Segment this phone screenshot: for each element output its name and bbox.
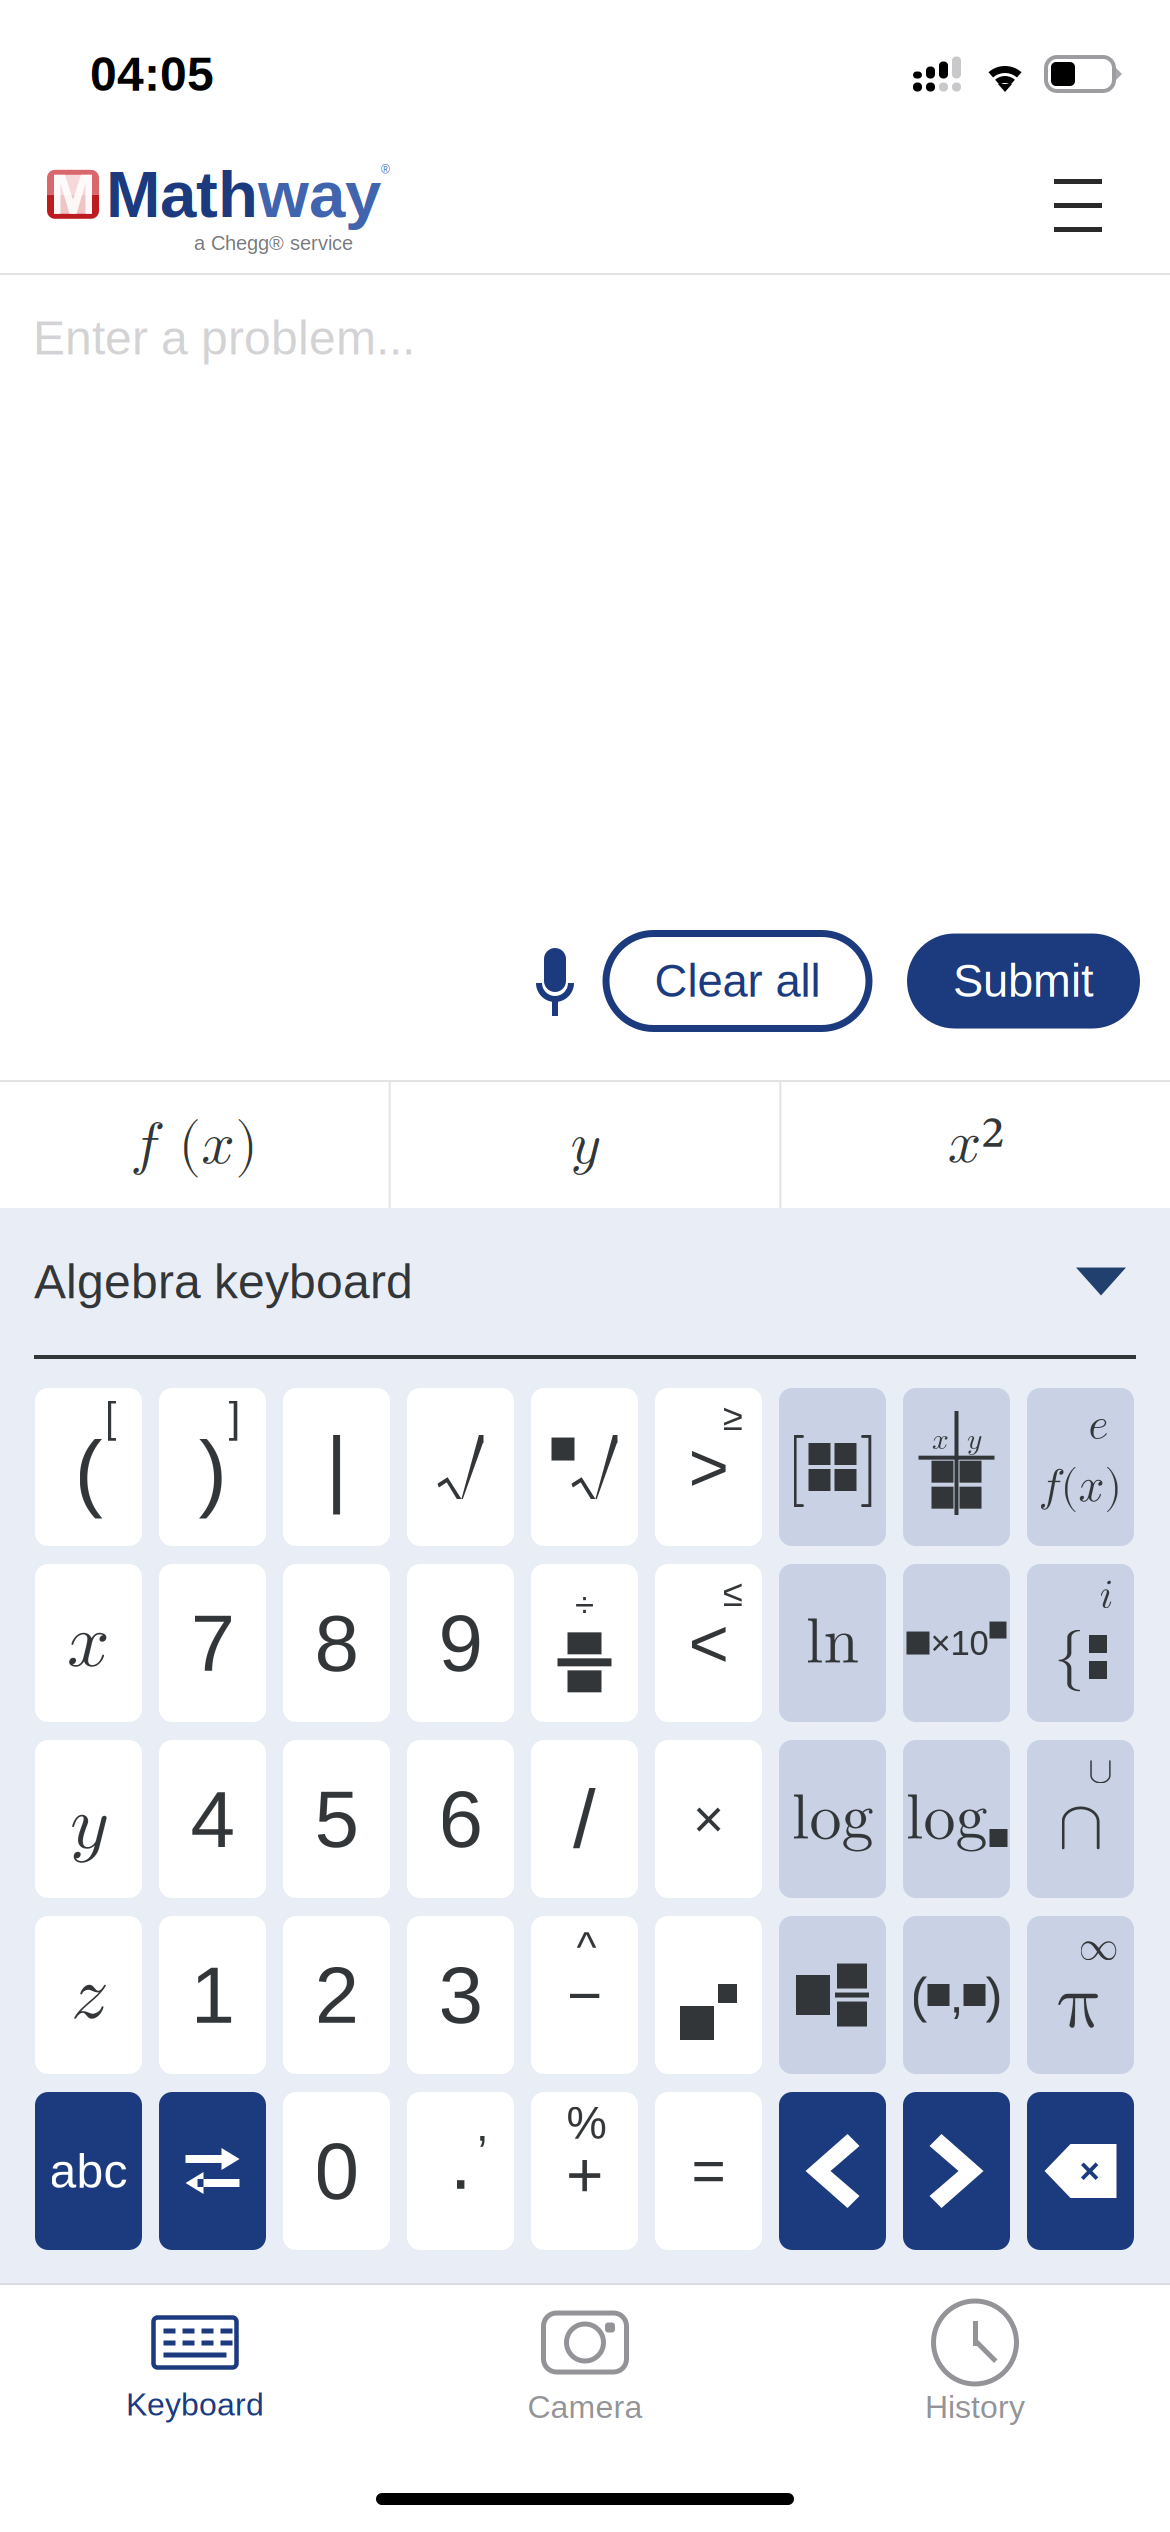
button[interactable] [779, 1916, 886, 2074]
button[interactable]: 𝑥 [35, 1564, 142, 1722]
button[interactable] [407, 1388, 514, 1546]
staticText: ( [74, 1423, 102, 1519]
button[interactable]: ×10 [903, 1564, 1010, 1722]
button[interactable]: log [903, 1740, 1010, 1898]
staticText: 𝑦 [570, 1116, 599, 1174]
button[interactable]: History [780, 2285, 1170, 2445]
staticText: 𝑓(𝑥) [1038, 1464, 1122, 1510]
staticText: ∪ [1088, 1752, 1113, 1790]
button[interactable]: = [655, 2092, 762, 2250]
button[interactable]: 𝑧 [35, 1916, 142, 2074]
button[interactable]: Math [47, 158, 390, 253]
staticText: 𝑦 [967, 1425, 981, 1455]
button[interactable]: log [779, 1740, 886, 1898]
button[interactable]: > [655, 1388, 762, 1546]
button[interactable]: 9 [407, 1564, 514, 1722]
button[interactable]: 5 [283, 1740, 390, 1898]
button[interactable]: 0 [283, 2092, 390, 2250]
button[interactable]: Keyboard [0, 2287, 390, 2442]
button[interactable] [655, 1916, 762, 2074]
button[interactable]: Menu [1038, 163, 1118, 248]
staticText: ^ [576, 1923, 596, 1971]
staticText: 5 [314, 1774, 358, 1864]
staticText: [ [785, 1431, 805, 1503]
button[interactable]: π [1027, 1916, 1134, 2074]
staticText: π [1058, 1964, 1103, 2042]
staticText: 𝑓 (𝑥) [130, 1116, 258, 1174]
button[interactable]: 8 [283, 1564, 390, 1722]
staticText: log [905, 1787, 987, 1851]
staticText: ) [985, 1967, 1002, 2023]
button[interactable]: [ [779, 1388, 886, 1546]
staticText: 𝑒 [1088, 1404, 1108, 1446]
button[interactable] [531, 1388, 638, 1546]
staticText: 7 [190, 1598, 234, 1688]
button[interactable]: ÷ [531, 1564, 638, 1722]
button[interactable] [159, 2092, 266, 2250]
staticText: × [1079, 2152, 1099, 2190]
button[interactable]: 3 [407, 1916, 514, 2074]
button[interactable]: . [407, 2092, 514, 2250]
button[interactable]: ln [779, 1564, 886, 1722]
button[interactable]: 𝑥² [781, 1082, 1170, 1208]
staticText: , [476, 2100, 489, 2150]
staticText: 3 [438, 1950, 482, 2040]
button[interactable]: 𝑦 [35, 1740, 142, 1898]
staticText: ] [228, 1393, 240, 1441]
staticText: ≤ [722, 1572, 742, 1614]
button[interactable]: 𝑓(𝑥) [1027, 1388, 1134, 1546]
staticText: Camera [527, 2389, 642, 2425]
staticText: Math [106, 158, 258, 231]
button[interactable]: Voice input [516, 932, 594, 1030]
button[interactable]: 1 [159, 1916, 266, 2074]
button[interactable]: / [531, 1740, 638, 1898]
button[interactable]: 𝑓 (𝑥) [0, 1082, 389, 1208]
button[interactable]: 6 [407, 1740, 514, 1898]
button[interactable]: + [531, 2092, 638, 2250]
staticText: ÷ [575, 1586, 594, 1624]
staticText: / [573, 1773, 596, 1865]
staticText: ∞ [1078, 1927, 1118, 1967]
staticText: 𝑥² [948, 1114, 1004, 1176]
button[interactable]: 𝑥 [903, 1388, 1010, 1546]
staticText: = [691, 2138, 725, 2204]
staticText: 𝑦 [70, 1788, 107, 1862]
button[interactable]: Submit [907, 933, 1140, 1028]
staticText: 9 [438, 1598, 482, 1688]
button[interactable]: Clear all [606, 933, 869, 1028]
button[interactable]: ( [35, 1388, 142, 1546]
staticText: 0 [314, 2126, 358, 2216]
button[interactable]: < [655, 1564, 762, 1722]
button[interactable]: 4 [159, 1740, 266, 1898]
staticText: way [258, 158, 381, 231]
staticText: − [566, 1961, 602, 2029]
staticText: 𝑥 [932, 1425, 949, 1455]
button[interactable]: ( [903, 1916, 1010, 2074]
button[interactable]: Camera [390, 2285, 780, 2445]
staticText: Submit [953, 956, 1094, 1006]
button[interactable]: abc [35, 2092, 142, 2250]
staticText: log [791, 1787, 873, 1851]
button[interactable]: ∩ [1027, 1740, 1134, 1898]
button[interactable] [779, 2092, 886, 2250]
button[interactable]: ) [159, 1388, 266, 1546]
staticText: History [925, 2389, 1025, 2425]
button[interactable] [903, 2092, 1010, 2250]
staticText: Algebra keyboard [34, 1255, 413, 1308]
staticText: 8 [314, 1598, 358, 1688]
button[interactable]: | [283, 1388, 390, 1546]
staticText: Keyboard [126, 2386, 264, 2422]
button[interactable]: 2 [283, 1916, 390, 2074]
staticText: < [688, 1604, 728, 1682]
staticText: ) [198, 1423, 226, 1519]
button[interactable]: × [655, 1740, 762, 1898]
staticText: 𝑥 [67, 1606, 110, 1680]
staticText: [ [104, 1393, 116, 1441]
staticText: ≥ [722, 1396, 742, 1438]
button[interactable]: { [1027, 1564, 1134, 1722]
button[interactable]: × [1027, 2092, 1134, 2250]
staticText: Enter a problem... [33, 311, 415, 365]
button[interactable]: − [531, 1916, 638, 2074]
button[interactable]: 𝑦 [391, 1082, 779, 1208]
button[interactable]: 7 [159, 1564, 266, 1722]
